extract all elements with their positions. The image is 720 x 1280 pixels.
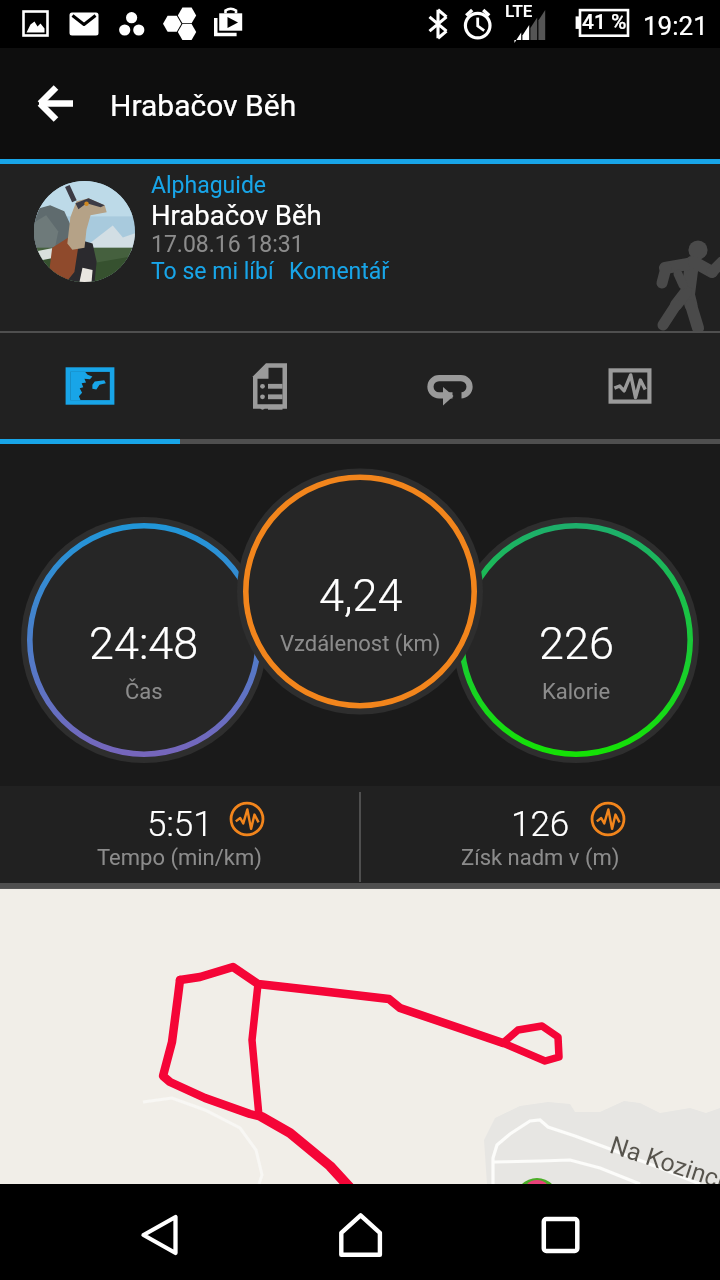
- staticText: 24:48: [89, 617, 199, 670]
- button[interactable]: Recents: [512, 1184, 608, 1280]
- button[interactable]: 126: [361, 786, 720, 888]
- staticText: Čas: [125, 679, 163, 705]
- staticText: Tempo (min/km): [97, 845, 262, 871]
- staticText: Na Kozinci: [606, 1130, 720, 1195]
- button[interactable]: Map: [0, 333, 180, 439]
- staticText: 4,24: [319, 569, 403, 622]
- button[interactable]: To se mi líbí: [151, 258, 274, 285]
- button[interactable]: Laps: [360, 333, 540, 439]
- button[interactable]: Graph: [540, 333, 720, 439]
- staticText: LTE: [505, 1, 533, 21]
- button[interactable]: Back: [0, 48, 112, 159]
- staticText: 126: [511, 804, 570, 845]
- button[interactable]: 5:51: [0, 786, 359, 888]
- button[interactable]: 4,24: [243, 475, 477, 709]
- staticText: 41 %: [582, 10, 627, 35]
- staticText: 5:51: [147, 804, 213, 845]
- staticText: 226: [539, 617, 614, 670]
- button[interactable]: Details: [180, 333, 360, 439]
- staticText: Kalorie: [542, 679, 611, 705]
- button[interactable]: 24:48: [27, 523, 261, 757]
- button[interactable]: Home: [312, 1184, 408, 1280]
- button[interactable]: Back: [111, 1184, 207, 1280]
- staticText: Vzdálenost (km): [280, 631, 441, 657]
- staticText: Hrabačov Běh: [151, 199, 322, 231]
- staticText: Získ nadm v (m): [461, 845, 620, 871]
- button[interactable]: Komentář: [289, 258, 390, 285]
- staticText: 19:21: [643, 11, 708, 41]
- button[interactable]: Alphaguide: [151, 172, 267, 199]
- staticText: Hrabačov Běh: [110, 88, 297, 123]
- button[interactable]: 226: [459, 523, 693, 757]
- staticText: 17.08.16 18:31: [151, 231, 304, 258]
